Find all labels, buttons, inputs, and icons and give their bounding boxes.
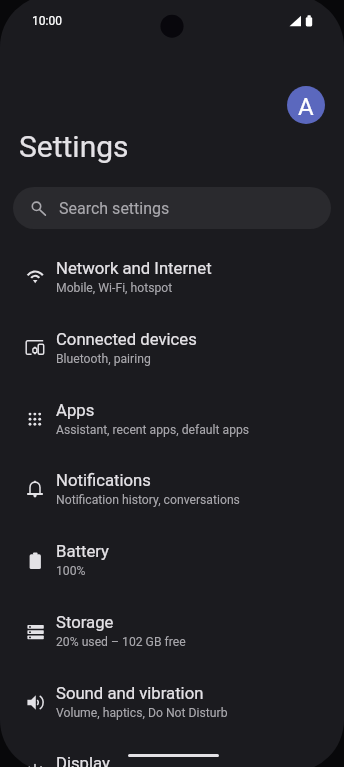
- button[interactable]: Network and Internet: [0, 249, 344, 320]
- staticText: Storage: [56, 613, 114, 633]
- button[interactable]: Sound and vibration: [0, 674, 344, 745]
- button[interactable]: Notifications: [0, 461, 344, 532]
- button[interactable]: Apps: [0, 391, 344, 462]
- staticText: Mobile, Wi-Fi, hotspot: [56, 281, 173, 295]
- button[interactable]: Search settings: [13, 187, 331, 229]
- staticText: A: [298, 93, 314, 121]
- staticText: 100%: [56, 564, 86, 578]
- button[interactable]: Display: [0, 744, 344, 767]
- staticText: Connected devices: [56, 330, 197, 350]
- staticText: Assistant, recent apps, default apps: [56, 423, 250, 437]
- staticText: Display: [56, 754, 110, 767]
- staticText: 10:00: [32, 14, 62, 28]
- button[interactable]: Battery: [0, 532, 344, 603]
- staticText: Bluetooth, pairing: [56, 352, 151, 366]
- staticText: Apps: [56, 401, 95, 421]
- staticText: Settings: [19, 129, 129, 164]
- staticText: Volume, haptics, Do Not Disturb: [56, 706, 228, 720]
- staticText: Battery: [56, 542, 109, 562]
- staticText: Network and Internet: [56, 259, 212, 279]
- staticText: Sound and vibration: [56, 684, 204, 704]
- staticText: Search settings: [59, 199, 170, 218]
- staticText: Notifications: [56, 471, 151, 491]
- staticText: Notification history, conversations: [56, 493, 240, 507]
- staticText: 20% used – 102 GB free: [56, 635, 186, 649]
- button[interactable]: Connected devices: [0, 320, 344, 391]
- button[interactable]: Storage: [0, 603, 344, 674]
- button[interactable]: Account: [287, 86, 325, 124]
